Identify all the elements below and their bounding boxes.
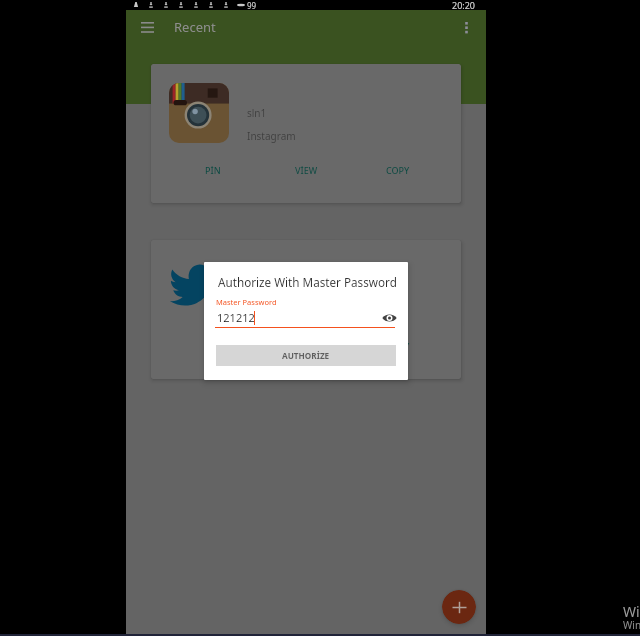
staticText: PİN [205, 340, 221, 352]
staticText: Instagram [247, 129, 296, 143]
staticText: 20:20 [452, 0, 476, 9]
button[interactable]: Navigation menu [134, 14, 160, 40]
staticText: 121212 [217, 310, 255, 325]
button[interactable]: COPY [377, 160, 419, 180]
staticText: AUTHORİZE [282, 350, 330, 361]
button[interactable]: PİN [151, 240, 461, 379]
button[interactable]: AUTHORİZE [216, 345, 396, 366]
staticText: Windows'u etkinleştirmek [623, 618, 640, 632]
staticText: Authorize With Master Password [218, 274, 397, 290]
staticText: VİEW [295, 340, 318, 352]
staticText: Master Password [216, 297, 277, 307]
button[interactable]: VİEW [285, 160, 327, 180]
staticText: PİN [205, 164, 221, 176]
button[interactable]: More options [454, 15, 478, 39]
button[interactable]: COPY [377, 336, 419, 356]
button[interactable]: PİN [196, 160, 230, 180]
staticText: Recent [174, 18, 216, 36]
staticText: sln1 [247, 106, 267, 120]
staticText: Windows'u Etkinleştir [623, 602, 640, 621]
staticText: COPY [386, 164, 410, 176]
staticText: VİEW [295, 164, 318, 176]
button[interactable]: VİEW [285, 336, 327, 356]
button[interactable]: Show password [378, 307, 400, 329]
button[interactable]: Add [442, 590, 476, 624]
staticText: COPY [386, 340, 410, 352]
button[interactable]: PİN [196, 336, 230, 356]
staticText: 99 [247, 0, 257, 10]
button[interactable]: sln1 [151, 64, 461, 203]
